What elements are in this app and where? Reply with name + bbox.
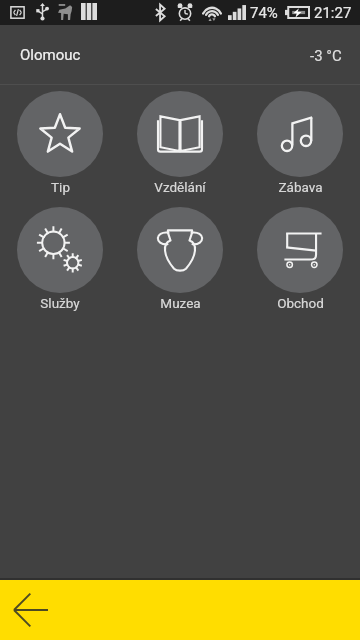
button[interactable]: Back bbox=[0, 580, 360, 640]
staticText: Služby bbox=[40, 295, 80, 311]
staticText: Tip bbox=[51, 179, 70, 195]
staticText: 21:27 bbox=[314, 4, 352, 22]
staticText: Zábava bbox=[278, 179, 323, 195]
staticText: Obchod bbox=[277, 295, 324, 311]
button[interactable]: Obchod bbox=[240, 207, 360, 323]
button[interactable]: Služby bbox=[0, 207, 120, 323]
staticText: Vzdělání bbox=[154, 179, 206, 195]
button[interactable]: Muzea bbox=[120, 207, 240, 323]
button[interactable]: Tip bbox=[0, 91, 120, 207]
staticText: Muzea bbox=[160, 295, 201, 311]
staticText: -3 °C bbox=[310, 47, 342, 65]
staticText: 74% bbox=[250, 4, 278, 22]
staticText: Olomouc bbox=[20, 46, 81, 64]
button[interactable]: Zábava bbox=[240, 91, 360, 207]
button[interactable]: Vzdělání bbox=[120, 91, 240, 207]
